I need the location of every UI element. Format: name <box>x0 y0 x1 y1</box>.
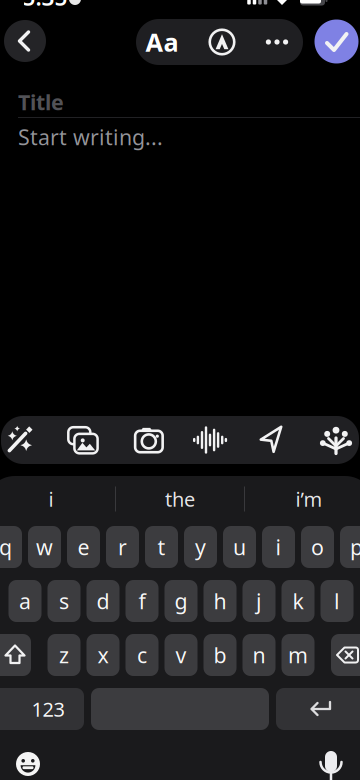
staticText: h <box>213 587 226 615</box>
staticText: o <box>311 533 324 561</box>
button[interactable]: a <box>8 580 41 622</box>
staticText: e <box>77 533 89 561</box>
button[interactable]: Dictation <box>305 738 357 780</box>
staticText: i <box>48 486 53 512</box>
button[interactable]: x <box>86 634 119 676</box>
staticText: j <box>256 587 262 615</box>
button[interactable]: Emoji <box>2 738 54 780</box>
button[interactable]: Magic entry <box>0 416 49 464</box>
button[interactable]: n <box>242 634 275 676</box>
button[interactable]: t <box>145 526 178 568</box>
button[interactable]: g <box>164 580 197 622</box>
staticText: v <box>175 641 186 669</box>
staticText: m <box>288 641 308 669</box>
staticText: r <box>118 533 127 561</box>
button[interactable]: o <box>301 526 334 568</box>
button[interactable]: r <box>106 526 139 568</box>
staticText: s <box>59 587 69 615</box>
button[interactable]: u <box>223 526 256 568</box>
button[interactable]: Camera <box>121 416 173 464</box>
staticText: Aa <box>145 25 178 59</box>
button[interactable]: Delete <box>331 634 360 676</box>
staticText: i <box>275 533 281 561</box>
staticText: i’m <box>295 486 322 512</box>
button[interactable]: p <box>340 526 360 568</box>
button[interactable]: w <box>28 526 61 568</box>
button[interactable]: Back <box>4 20 46 62</box>
staticText: q <box>0 533 12 561</box>
staticText: the <box>165 486 195 512</box>
staticText: p <box>350 533 360 561</box>
button[interactable]: z <box>47 634 80 676</box>
staticText: t <box>157 533 165 561</box>
staticText: y <box>195 533 206 561</box>
staticText: b <box>213 641 226 669</box>
staticText: k <box>292 587 303 615</box>
button[interactable]: h <box>203 580 236 622</box>
staticText: 123 <box>31 696 64 722</box>
button[interactable]: Return <box>276 688 360 730</box>
staticText: g <box>174 587 187 615</box>
button[interactable]: y <box>184 526 217 568</box>
button[interactable]: Writing tools <box>195 19 249 65</box>
button[interactable]: Audio recording <box>184 416 236 464</box>
staticText: n <box>252 641 265 669</box>
button[interactable]: Daily prompt <box>309 416 360 464</box>
staticText: Title <box>18 88 64 116</box>
staticText: z <box>59 641 69 669</box>
button[interactable]: v <box>164 634 197 676</box>
button[interactable]: Photos <box>59 416 111 464</box>
button[interactable]: q <box>0 526 22 568</box>
staticText: f <box>138 587 145 615</box>
button[interactable]: b <box>203 634 236 676</box>
button[interactable]: e <box>67 526 100 568</box>
button[interactable]: d <box>86 580 119 622</box>
button[interactable]: i’m <box>257 481 360 517</box>
button[interactable]: Numbers <box>0 688 84 730</box>
staticText: w <box>36 533 53 561</box>
staticText: l <box>334 587 340 615</box>
button[interactable]: f <box>125 580 158 622</box>
button[interactable]: i <box>0 481 103 517</box>
button[interactable]: j <box>242 580 275 622</box>
button[interactable]: c <box>125 634 158 676</box>
staticText: Start writing... <box>18 123 163 151</box>
button[interactable]: Text formatting <box>136 19 188 65</box>
staticText: u <box>233 533 246 561</box>
button[interactable]: Shift <box>0 634 31 676</box>
staticText: c <box>137 641 147 669</box>
button[interactable]: the <box>120 481 240 517</box>
staticText: x <box>97 641 108 669</box>
button[interactable]: More <box>252 19 302 65</box>
button[interactable]: m <box>281 634 314 676</box>
button[interactable]: s <box>47 580 80 622</box>
button[interactable]: Location <box>246 416 298 464</box>
staticText: d <box>96 587 109 615</box>
staticText: a <box>19 587 31 615</box>
staticText: 5:35 <box>22 0 67 12</box>
button[interactable]: i <box>262 526 295 568</box>
button[interactable]: Save <box>314 19 358 63</box>
button[interactable]: l <box>320 580 353 622</box>
button[interactable]: k <box>281 580 314 622</box>
